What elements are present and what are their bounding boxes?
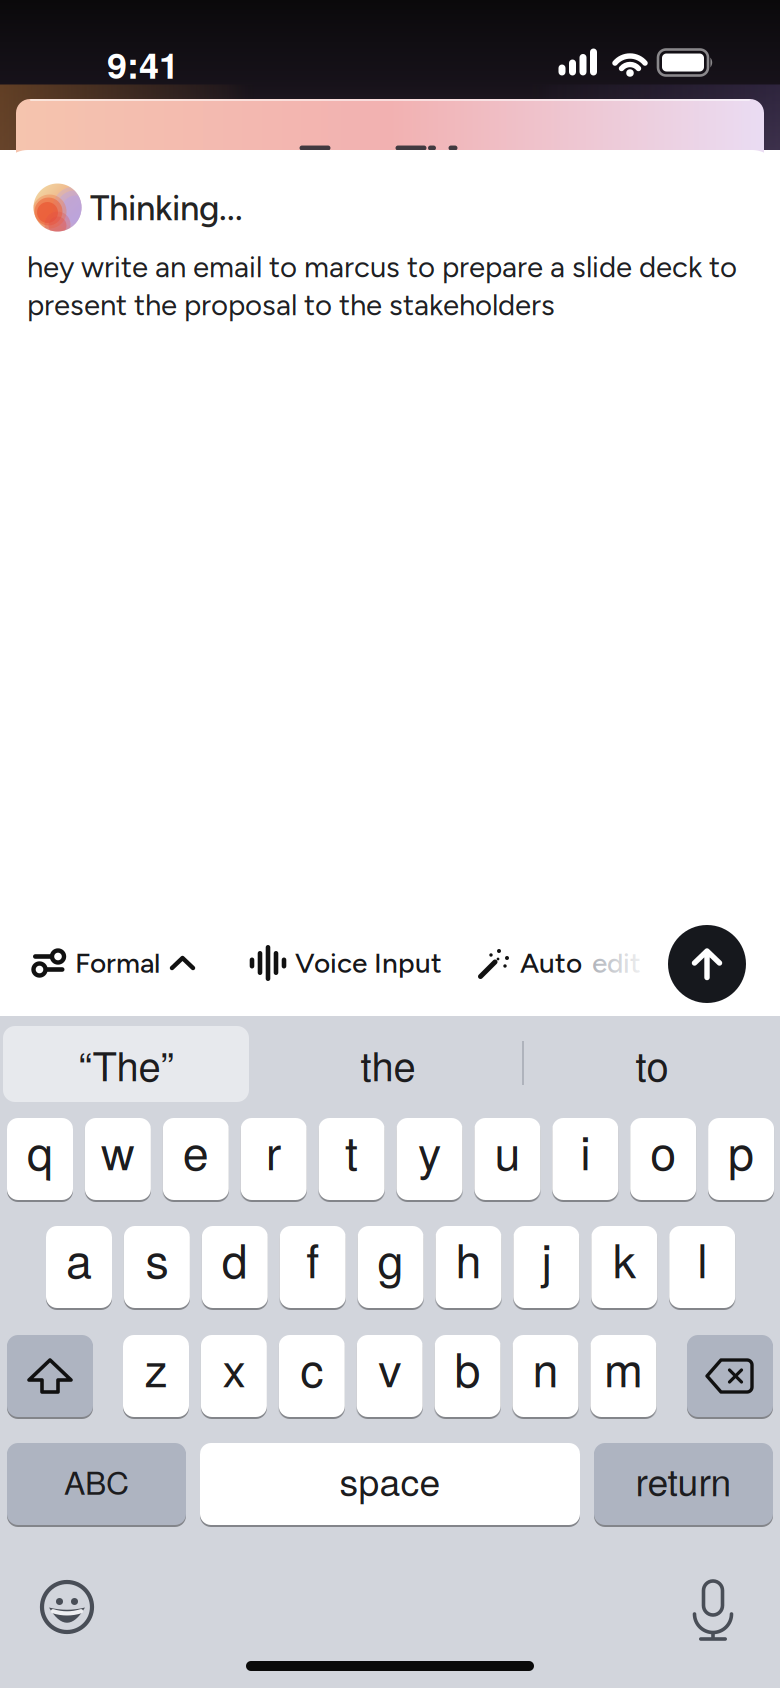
button[interactable]: d — [202, 1226, 268, 1308]
staticText: edit — [592, 946, 641, 980]
staticText: hey write an email to marcus to prepare … — [27, 249, 737, 285]
button[interactable]: w — [85, 1118, 151, 1200]
button[interactable]: y — [396, 1118, 462, 1200]
staticText: c — [300, 1334, 323, 1400]
staticText: y — [418, 1117, 441, 1183]
button[interactable]: Auto — [478, 933, 641, 993]
staticText: Thinking... — [90, 187, 243, 229]
button[interactable]: return — [594, 1443, 773, 1525]
staticText: s — [145, 1225, 168, 1291]
staticText: “The” — [78, 1035, 173, 1093]
button[interactable]: e — [163, 1118, 229, 1200]
staticText: x — [222, 1334, 245, 1400]
button[interactable]: q — [7, 1118, 73, 1200]
button[interactable]: to — [552, 1034, 752, 1094]
staticText: the — [360, 1035, 415, 1093]
button[interactable] — [42, 1582, 92, 1632]
staticText: Voice Input — [295, 946, 442, 980]
button[interactable]: f — [280, 1226, 346, 1308]
staticText: q — [27, 1117, 53, 1183]
staticText: f — [306, 1225, 319, 1291]
button[interactable]: k — [591, 1226, 657, 1308]
staticText: v — [378, 1334, 401, 1400]
staticText: o — [650, 1117, 676, 1183]
button[interactable]: a — [46, 1226, 112, 1308]
button[interactable]: h — [435, 1226, 501, 1308]
staticText: Auto — [520, 946, 582, 980]
button[interactable]: i — [552, 1118, 618, 1200]
button[interactable] — [7, 1335, 93, 1417]
staticText: present the proposal to the stakeholders — [27, 287, 555, 323]
button[interactable]: l — [669, 1226, 735, 1308]
button[interactable]: Voice Input — [252, 933, 442, 993]
button[interactable]: the — [288, 1034, 488, 1094]
staticText: t — [345, 1117, 358, 1183]
button[interactable]: t — [319, 1118, 385, 1200]
staticText: m — [604, 1334, 643, 1400]
button[interactable]: b — [435, 1335, 501, 1417]
staticText: n — [532, 1334, 558, 1400]
staticText: l — [697, 1225, 707, 1291]
button[interactable]: u — [474, 1118, 540, 1200]
staticText: return — [635, 1453, 731, 1507]
button[interactable] — [668, 925, 746, 1003]
staticText: Formal — [75, 946, 160, 980]
button[interactable]: space — [200, 1443, 580, 1525]
staticText: w — [101, 1117, 135, 1183]
button[interactable]: m — [590, 1335, 656, 1417]
staticText: d — [222, 1225, 248, 1291]
staticText: j — [541, 1225, 551, 1291]
button[interactable]: c — [279, 1335, 345, 1417]
button[interactable]: z — [123, 1335, 189, 1417]
staticText: u — [494, 1117, 520, 1183]
staticText: k — [613, 1225, 636, 1291]
staticText: ABC — [64, 1458, 129, 1504]
staticText: space — [339, 1453, 440, 1507]
staticText: g — [378, 1225, 404, 1291]
button[interactable]: p — [708, 1118, 774, 1200]
button[interactable]: n — [512, 1335, 578, 1417]
button[interactable]: s — [124, 1226, 190, 1308]
staticText: b — [455, 1334, 481, 1400]
staticText: a — [66, 1225, 92, 1291]
button[interactable]: j — [513, 1226, 579, 1308]
button[interactable]: o — [630, 1118, 696, 1200]
staticText: h — [455, 1225, 481, 1291]
button[interactable]: g — [358, 1226, 424, 1308]
staticText: z — [144, 1334, 167, 1400]
staticText: i — [580, 1117, 590, 1183]
button[interactable]: Formal — [33, 933, 194, 993]
button[interactable]: r — [241, 1118, 307, 1200]
staticText: e — [183, 1117, 209, 1183]
button[interactable]: “The” — [3, 1026, 249, 1102]
staticText: to — [635, 1035, 668, 1093]
button[interactable]: ABC — [7, 1443, 186, 1525]
button[interactable]: v — [357, 1335, 423, 1417]
staticText: r — [266, 1117, 282, 1183]
button[interactable] — [693, 1579, 733, 1641]
staticText: 9:41 — [107, 38, 179, 90]
button[interactable]: x — [201, 1335, 267, 1417]
staticText: p — [728, 1117, 754, 1183]
button[interactable] — [687, 1335, 773, 1417]
